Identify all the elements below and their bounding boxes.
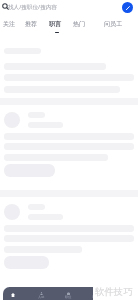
- button[interactable]: 热门: [70, 17, 89, 31]
- button[interactable]: 职位: [57, 287, 79, 300]
- button[interactable]: 问员工: [101, 17, 126, 31]
- staticText: 找人/搜职位/搜内容: [8, 3, 57, 11]
- button[interactable]: 推荐: [22, 17, 41, 31]
- button[interactable]: 消息: [84, 287, 106, 300]
- button[interactable]: 人脉: [30, 287, 52, 300]
- other: 搜索: [2, 3, 9, 10]
- staticText: 问员工: [104, 20, 123, 28]
- staticText: 软件技巧: [95, 286, 133, 298]
- staticText: 人脉: [38, 295, 45, 299]
- staticText: 职言: [49, 20, 62, 28]
- button[interactable]: 发布: [122, 2, 133, 13]
- button[interactable]: 关注: [0, 17, 19, 31]
- button[interactable]: 搜索: [0, 0, 138, 14]
- button[interactable]: 首页: [3, 287, 24, 300]
- button[interactable]: 我的: [111, 287, 133, 300]
- staticText: 关注: [3, 20, 16, 28]
- staticText: 职位: [65, 295, 72, 299]
- staticText: 消息: [92, 295, 99, 299]
- button[interactable]: 职言: [46, 17, 65, 31]
- staticText: 我的: [119, 295, 126, 299]
- staticText: 推荐: [25, 20, 38, 28]
- staticText: 热门: [73, 20, 86, 28]
